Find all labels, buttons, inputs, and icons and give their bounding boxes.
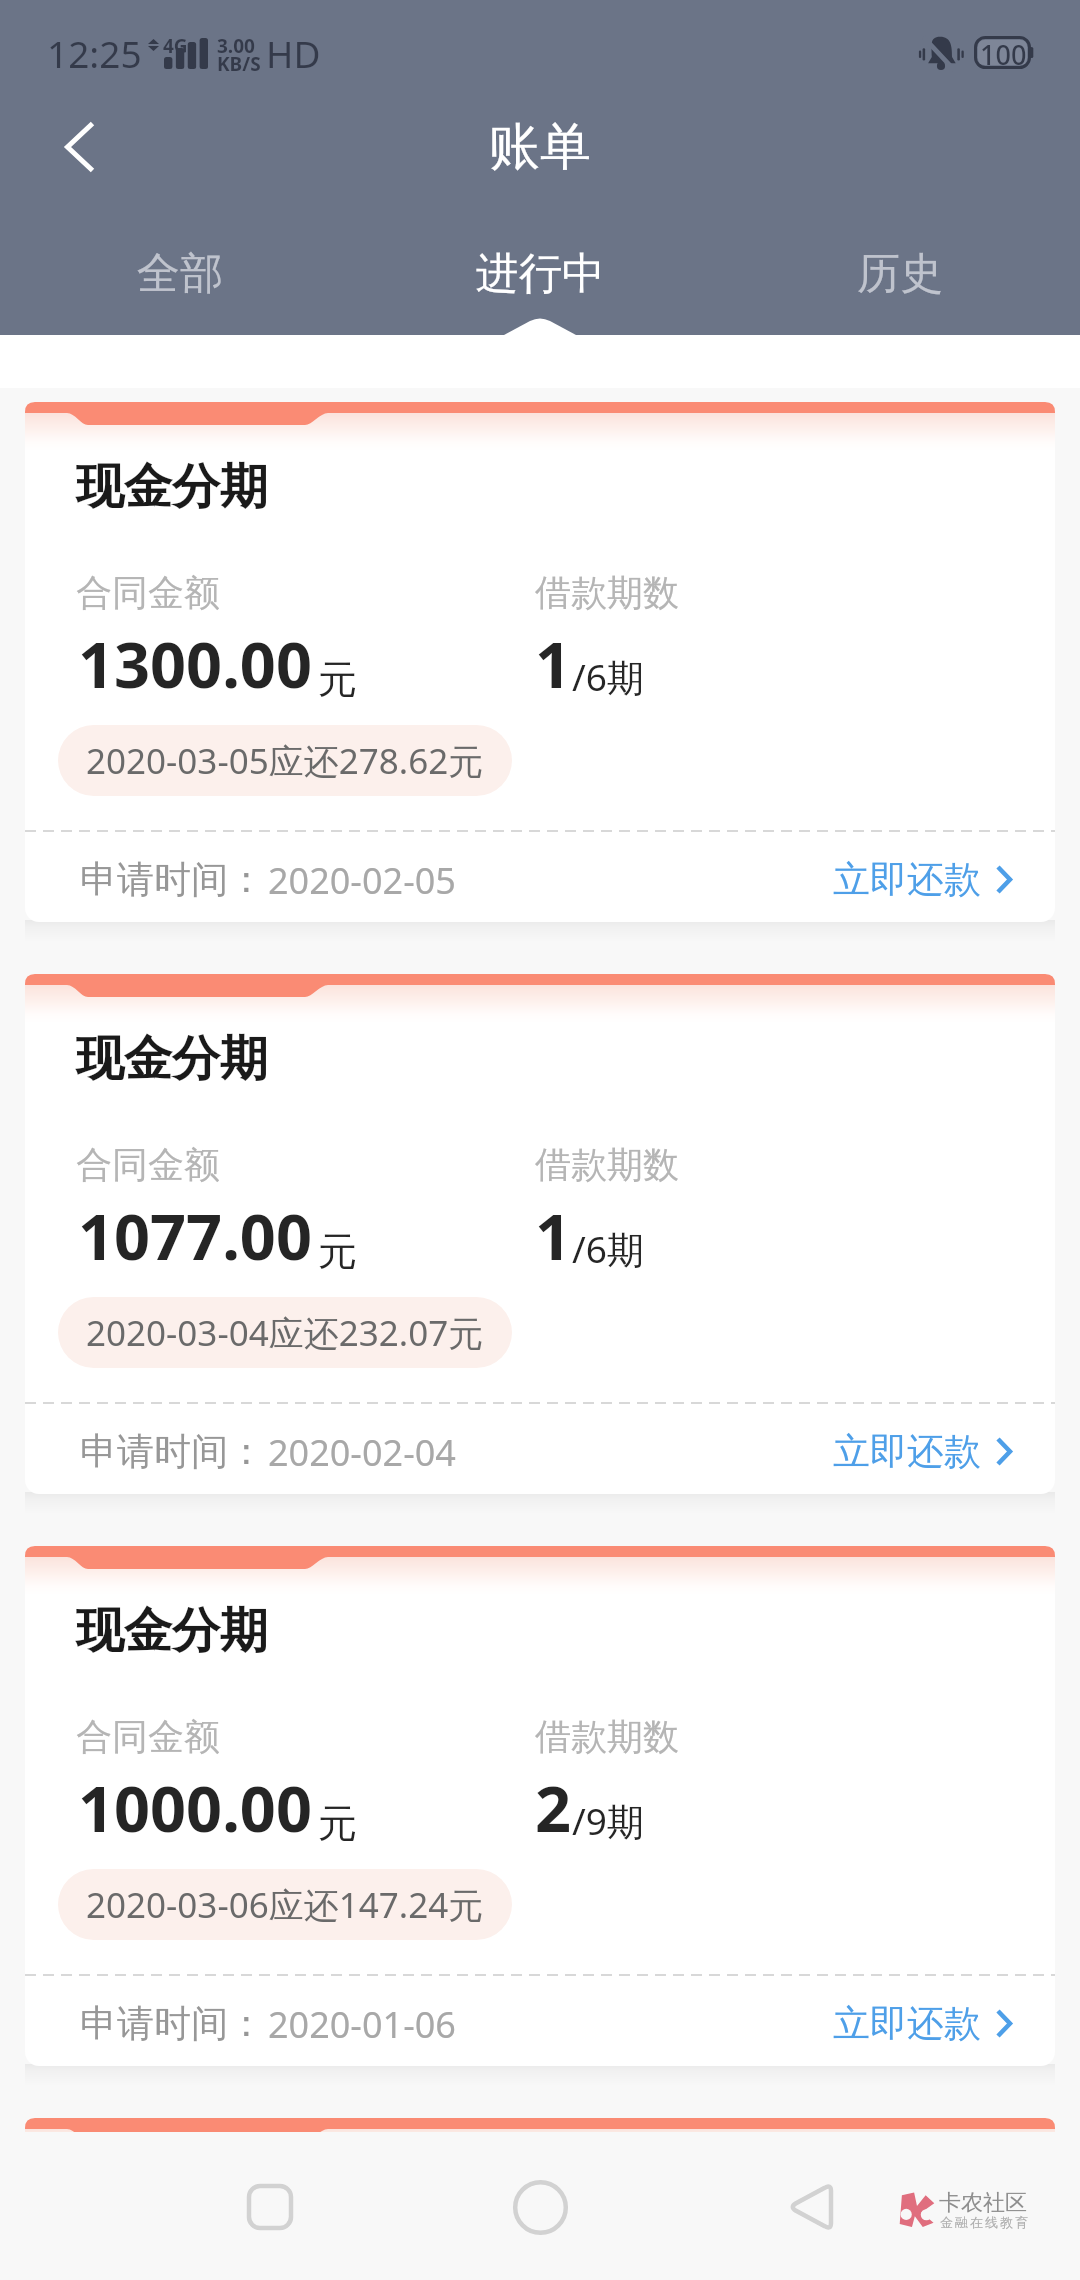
staticText: 借款期数 <box>535 570 679 615</box>
staticText: 2020-01-06 <box>268 2000 456 2049</box>
staticText: 1077.00 <box>78 1193 312 1279</box>
staticText: 卡农社区 <box>939 2189 1027 2217</box>
staticText: 申请时间： <box>80 1428 265 1475</box>
staticText: 2020-03-05应还278.62元 <box>86 737 484 785</box>
staticText: 合同金额 <box>76 1714 220 1759</box>
button[interactable]: 立即还款 <box>813 1414 1055 1489</box>
button[interactable] <box>25 1557 1055 2066</box>
staticText: 申请时间： <box>80 856 265 903</box>
staticText: 借款期数 <box>535 1142 679 1187</box>
staticText: 立即还款 <box>833 1428 981 1475</box>
staticText: 历史 <box>857 247 943 301</box>
staticText: 100 <box>980 36 1027 69</box>
button[interactable]: Back <box>755 2152 865 2262</box>
button[interactable]: Back <box>25 98 135 196</box>
staticText: 进行中 <box>476 247 605 301</box>
staticText: 12:25 <box>47 28 142 78</box>
staticText: 账单 <box>489 115 591 179</box>
button[interactable]: 全部 <box>0 247 360 301</box>
staticText: 4G <box>163 33 188 59</box>
staticText: 元 <box>318 655 357 704</box>
button[interactable]: 历史 <box>720 247 1080 301</box>
staticText: /9期 <box>572 1795 644 1846</box>
staticText: 元 <box>318 1227 357 1276</box>
staticText: 现金分期 <box>76 457 268 517</box>
staticText: 合同金额 <box>76 1142 220 1187</box>
staticText: 2 <box>535 1765 572 1851</box>
button[interactable] <box>25 413 1055 922</box>
staticText: 现金分期 <box>76 1601 268 1661</box>
staticText: 1 <box>535 621 572 707</box>
staticText: 2020-03-06应还147.24元 <box>86 1881 484 1929</box>
staticText: 1300.00 <box>78 621 312 707</box>
staticText: 2020-02-04 <box>268 1428 456 1477</box>
staticText: 现金分期 <box>76 1029 268 1089</box>
button[interactable] <box>25 985 1055 1494</box>
staticText: 2020-03-04应还232.07元 <box>86 1309 484 1357</box>
staticText: 立即还款 <box>833 2000 981 2047</box>
staticText: 全部 <box>137 247 223 301</box>
button[interactable]: 进行中 <box>360 247 720 301</box>
staticText: 合同金额 <box>76 570 220 615</box>
staticText: 金融在线教育 <box>939 2214 1029 2230</box>
staticText: 借款期数 <box>535 1714 679 1759</box>
button[interactable]: Recent apps <box>215 2152 325 2262</box>
staticText: 1 <box>535 1193 572 1279</box>
staticText: 2020-02-05 <box>268 856 456 905</box>
staticText: 申请时间： <box>80 2000 265 2047</box>
staticText: HD <box>266 28 321 78</box>
staticText: 立即还款 <box>833 856 981 903</box>
button[interactable]: 立即还款 <box>813 842 1055 917</box>
staticText: /6期 <box>572 1223 644 1274</box>
staticText: 1000.00 <box>78 1765 312 1851</box>
staticText: 元 <box>318 1799 357 1848</box>
staticText: /6期 <box>572 651 644 702</box>
staticText: KB/S <box>217 51 261 77</box>
staticText: 3.00 <box>217 33 255 59</box>
button[interactable]: Home <box>485 2152 595 2262</box>
button[interactable]: 立即还款 <box>813 1986 1055 2061</box>
